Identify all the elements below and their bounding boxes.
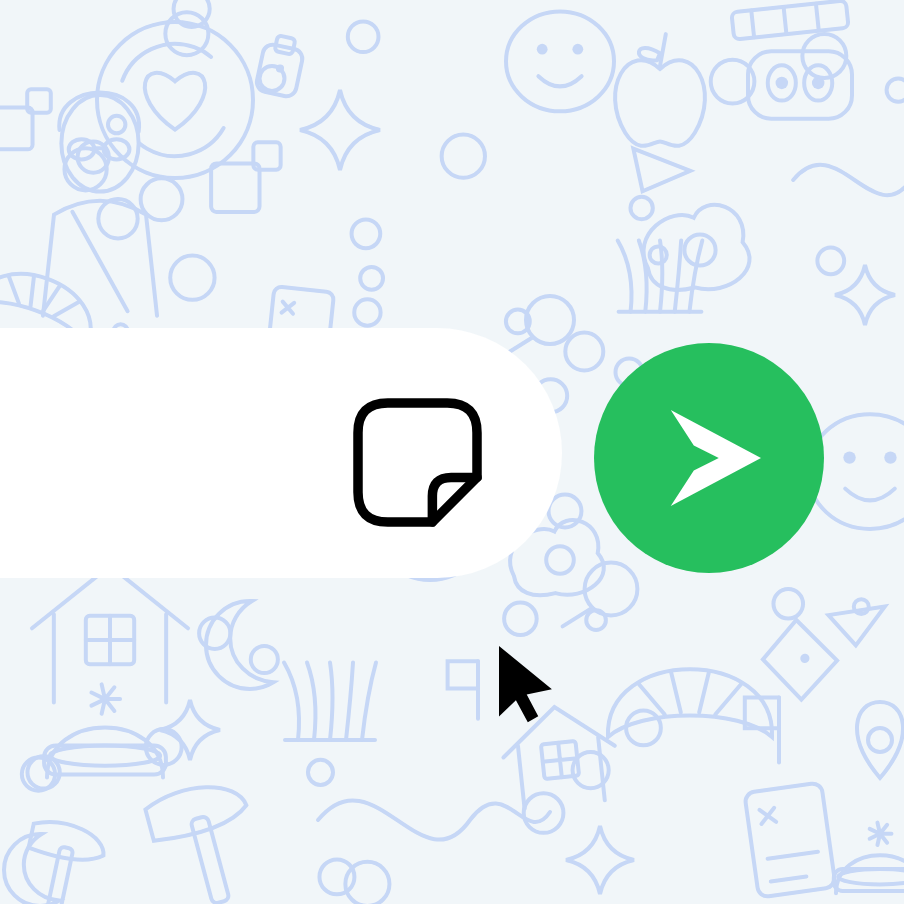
button[interactable] [0, 328, 562, 578]
button[interactable]: Stickers [352, 397, 482, 527]
button[interactable]: Send [594, 343, 824, 573]
